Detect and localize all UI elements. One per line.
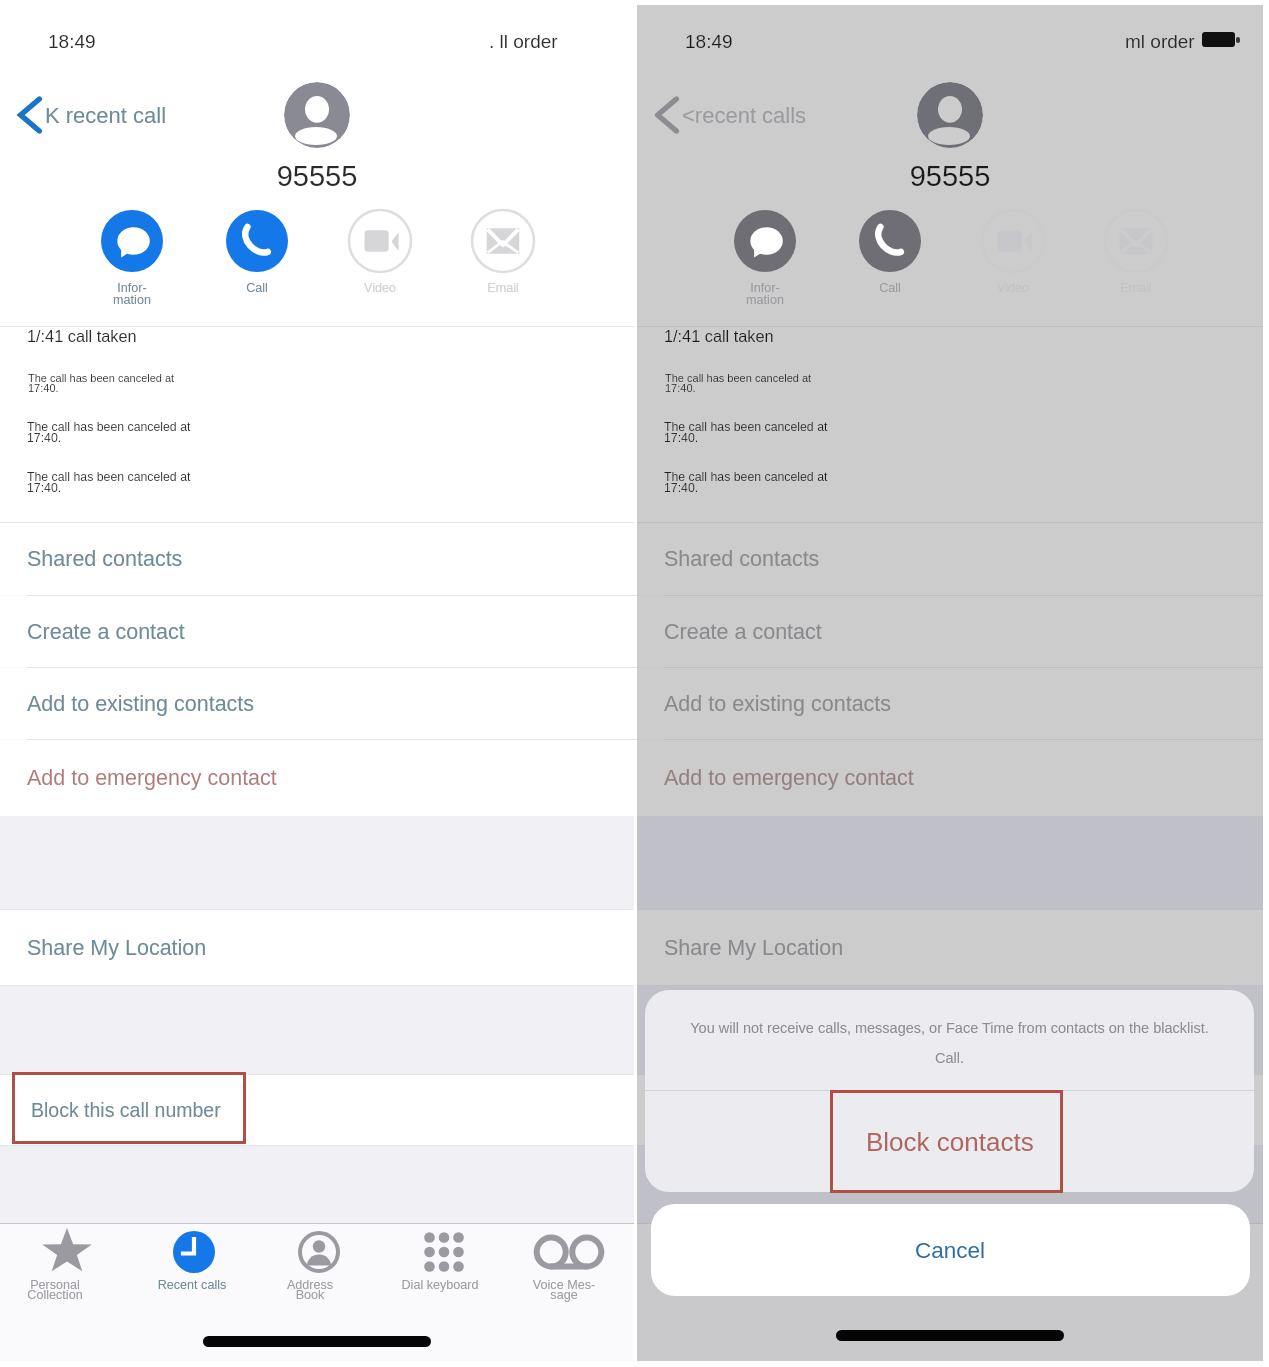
button[interactable]: Voice Mes- sage	[507, 1228, 631, 1302]
staticText: Infor- mation	[82, 281, 182, 307]
staticText: Email	[453, 281, 553, 295]
staticText: Shared contacts	[664, 547, 820, 571]
button[interactable]: Add to emergency contact	[0, 740, 634, 816]
staticText: The call has been canceled at 17:40.	[664, 420, 828, 444]
button[interactable]: Recent calls	[132, 1228, 256, 1292]
staticText: Shared contacts	[27, 547, 183, 571]
button[interactable]: Infor- mation	[715, 210, 815, 307]
button[interactable]: Back to recent calls	[655, 94, 807, 136]
staticText: Block this call number	[31, 1099, 221, 1121]
staticText: 95555	[637, 160, 1263, 192]
staticText: 18:49	[48, 31, 96, 52]
staticText: The call has been canceled at 17:40.	[27, 420, 191, 444]
button[interactable]: Share My Location	[0, 910, 634, 985]
staticText: Personal Collection	[0, 1278, 117, 1302]
staticText: Recent calls	[130, 1278, 254, 1292]
staticText: Call	[207, 281, 307, 295]
button[interactable]: Call	[840, 210, 940, 295]
button[interactable]: Block contacts	[645, 1091, 1254, 1192]
staticText: Infor- mation	[715, 281, 815, 307]
staticText: Share My Location	[27, 936, 207, 960]
staticText: 18:49	[685, 31, 733, 52]
staticText: K recent call	[45, 103, 167, 128]
button[interactable]: Create a contact	[0, 596, 634, 667]
button[interactable]: Cancel	[651, 1204, 1250, 1296]
button[interactable]: Share My Location	[637, 910, 1263, 985]
staticText: Add to emergency contact	[664, 766, 914, 790]
staticText: Voice Mes- sage	[502, 1278, 626, 1302]
staticText: 95555	[0, 160, 634, 192]
button[interactable]: Shared contacts	[0, 523, 634, 595]
button[interactable]: Personal Collection	[5, 1228, 129, 1302]
staticText: Video	[330, 281, 430, 295]
button[interactable]: Video	[330, 210, 430, 295]
button[interactable]: Shared contacts	[637, 523, 1263, 595]
staticText: Create a contact	[27, 620, 185, 644]
staticText: You will not receive calls, messages, or…	[645, 1020, 1254, 1066]
button[interactable]: Dial keyboard	[382, 1228, 506, 1292]
staticText: Add to existing contacts	[664, 692, 892, 716]
staticText: Block contacts	[866, 1127, 1034, 1156]
staticText: Add to existing contacts	[27, 692, 255, 716]
button[interactable]: Address Book	[257, 1228, 381, 1302]
button[interactable]: Back to recent calls	[18, 94, 167, 136]
button[interactable]: Add to emergency contact	[637, 740, 1263, 816]
staticText: Cancel	[915, 1238, 986, 1263]
button[interactable]: Infor- mation	[82, 210, 182, 307]
staticText: Share My Location	[664, 936, 844, 960]
staticText: Address Book	[248, 1278, 372, 1302]
button[interactable]: Block this call number	[637, 1075, 1263, 1145]
staticText: Create a contact	[664, 620, 822, 644]
staticText: Add to emergency contact	[27, 766, 277, 790]
button[interactable]: Block this call number	[0, 1075, 634, 1145]
button[interactable]: Add to existing contacts	[0, 668, 634, 739]
staticText: 1/:41 call taken	[664, 327, 774, 345]
staticText: Call	[840, 281, 940, 295]
staticText: 1/:41 call taken	[27, 327, 137, 345]
button[interactable]: Create a contact	[637, 596, 1263, 667]
staticText: The call has been canceled at 17:40.	[665, 372, 812, 395]
staticText: . ll order	[489, 31, 558, 52]
button[interactable]: Email	[453, 210, 553, 295]
button[interactable]: Call	[207, 210, 307, 295]
staticText: The call has been canceled at 17:40.	[27, 470, 191, 494]
staticText: The call has been canceled at 17:40.	[28, 372, 175, 395]
staticText: <recent calls	[682, 103, 807, 128]
staticText: Dial keyboard	[378, 1278, 502, 1292]
staticText: The call has been canceled at 17:40.	[664, 470, 828, 494]
staticText: Block this call number	[668, 1099, 858, 1121]
button[interactable]: Add to existing contacts	[637, 668, 1263, 739]
staticText: ml order	[1125, 31, 1195, 52]
